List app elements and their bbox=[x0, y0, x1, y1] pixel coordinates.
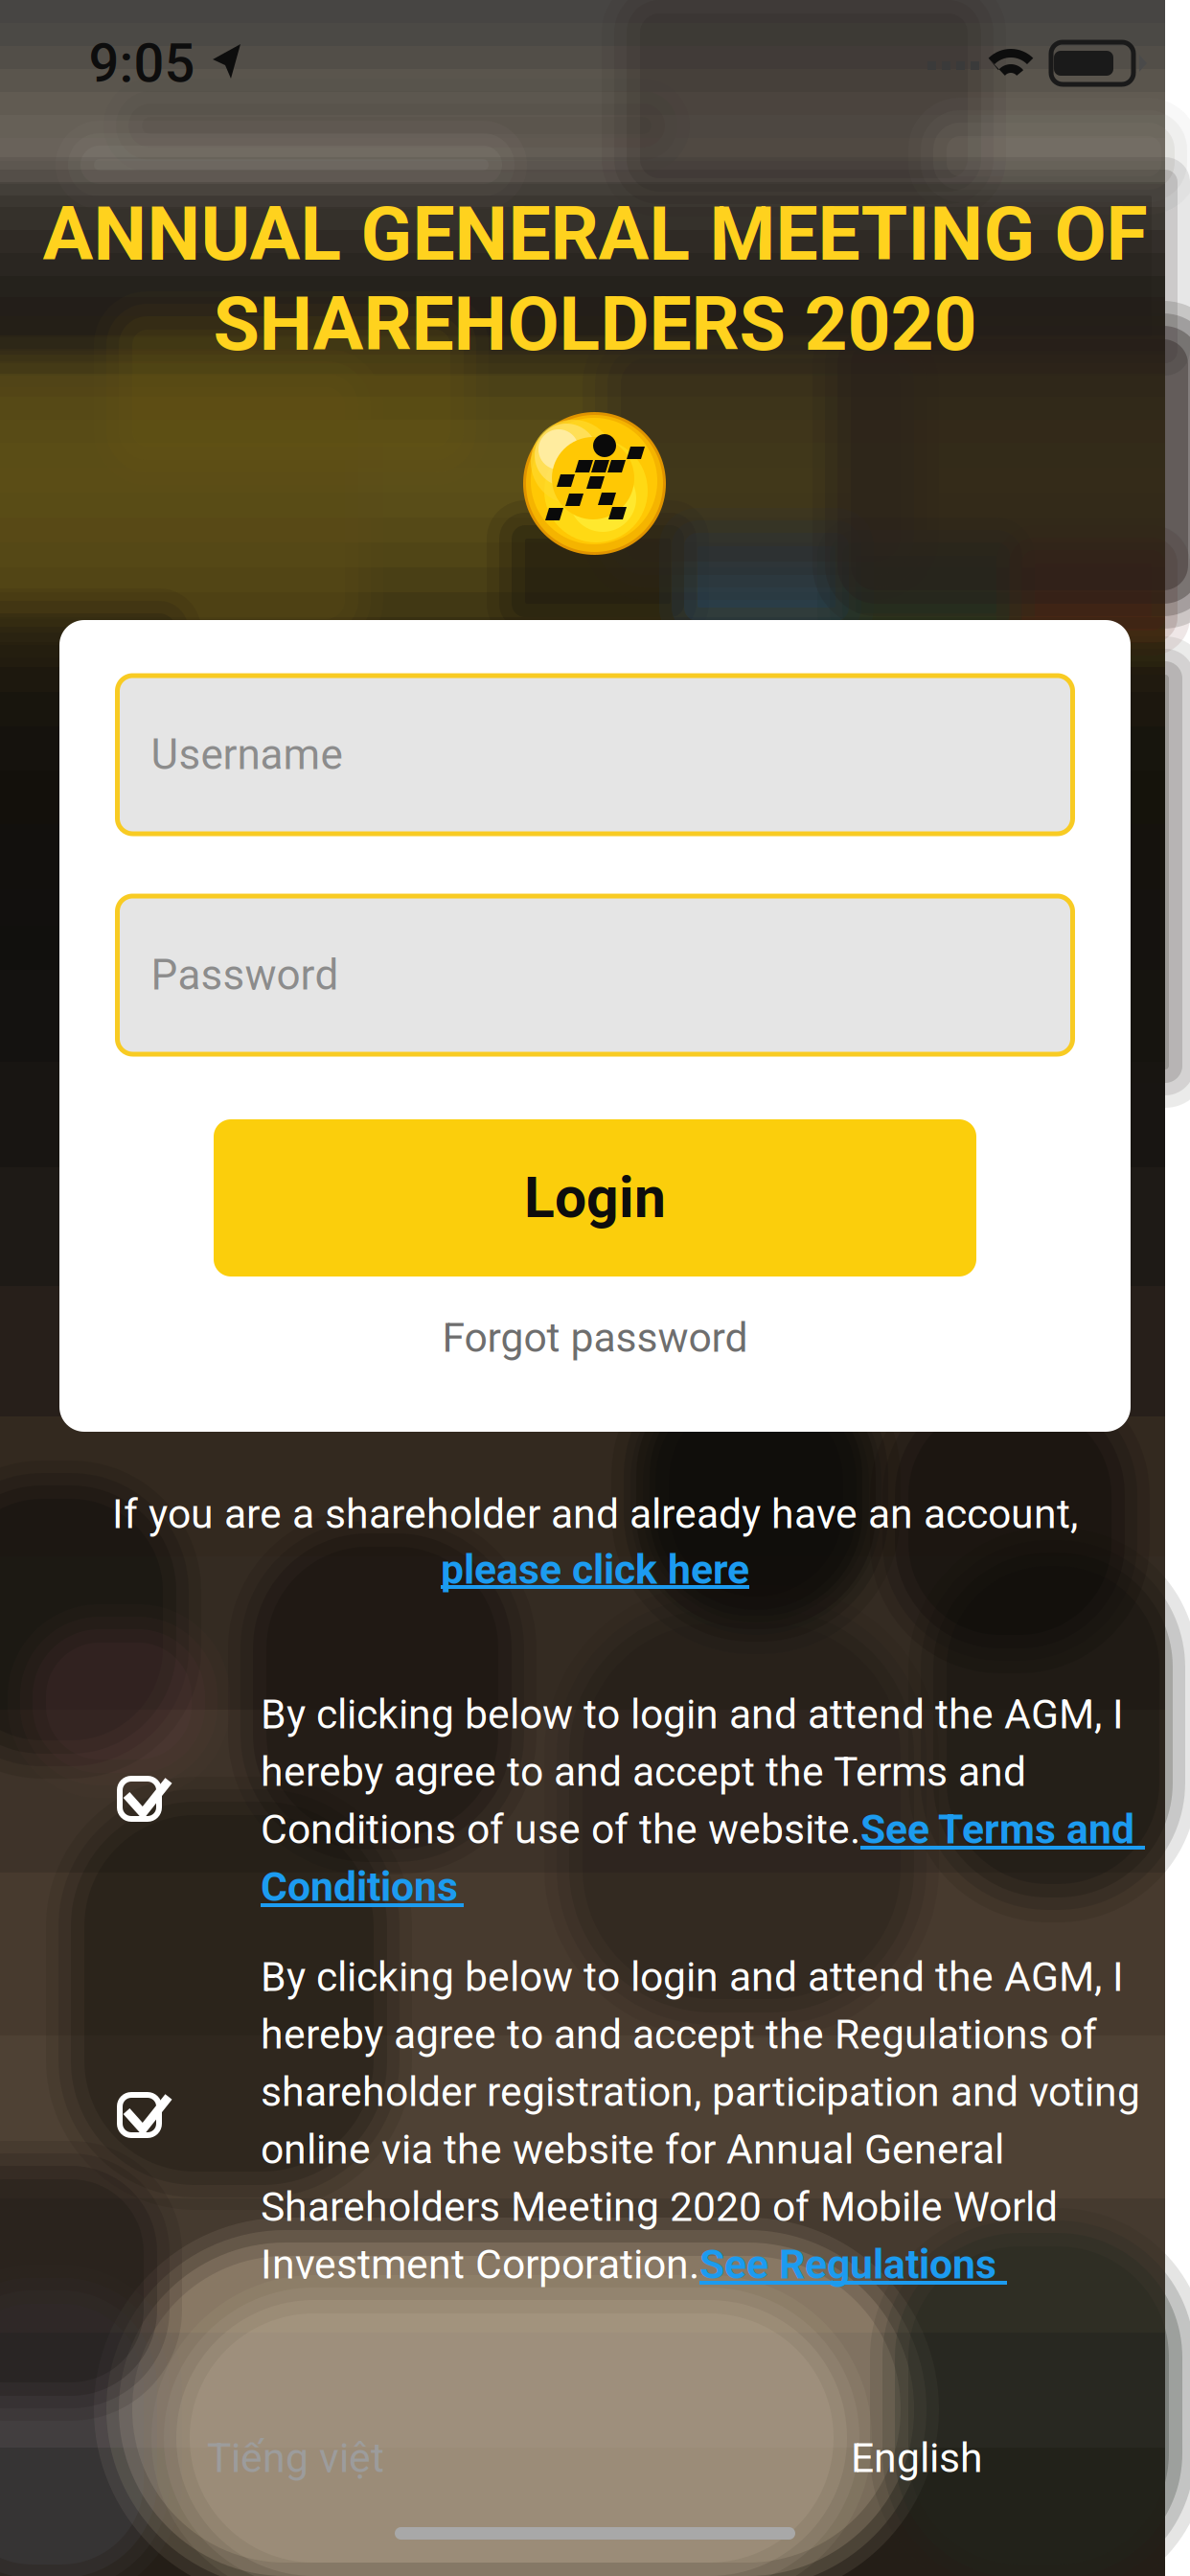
staticText: SHAREHOLDERS 2020 bbox=[213, 280, 977, 368]
staticText: Investment Corporation. bbox=[261, 2241, 699, 2288]
button[interactable]: Forgot password bbox=[355, 1299, 835, 1376]
staticText: Conditions of use of the website. bbox=[261, 1805, 860, 1853]
button[interactable]: Tiếng việt bbox=[207, 2415, 514, 2501]
button[interactable]: English bbox=[676, 2415, 983, 2501]
staticText: If you are a shareholder and already hav… bbox=[112, 1490, 1078, 1538]
staticText: Shareholders Meeting 2020 of Mobile Worl… bbox=[261, 2183, 1058, 2231]
staticText: Password bbox=[151, 950, 339, 1000]
staticText: English bbox=[851, 2434, 983, 2482]
staticText: See Regulations bbox=[699, 2241, 996, 2288]
staticText: Tiếng việt bbox=[207, 2434, 384, 2482]
staticText: online via the website for Annual Genera… bbox=[261, 2126, 1004, 2173]
staticText: 9:05 bbox=[89, 32, 195, 95]
staticText: shareholder registration, participation … bbox=[261, 2068, 1140, 2116]
staticText: Login bbox=[524, 1165, 666, 1231]
staticText: By clicking below to login and attend th… bbox=[261, 1953, 1124, 2001]
staticText: Username bbox=[151, 730, 343, 779]
staticText: hereby agree to and accept the Regulatio… bbox=[261, 2011, 1097, 2058]
button[interactable]: please click here bbox=[441, 1542, 749, 1598]
staticText: please click here bbox=[441, 1546, 749, 1594]
staticText: See Terms and bbox=[860, 1805, 1134, 1853]
button[interactable]: Agree to Terms and Conditions bbox=[92, 1753, 197, 1845]
staticText: hereby agree to and accept the Terms and bbox=[261, 1748, 1026, 1796]
staticText: By clicking below to login and attend th… bbox=[261, 1690, 1124, 1738]
staticText: Conditions bbox=[261, 1863, 458, 1911]
staticText: Forgot password bbox=[442, 1314, 748, 1362]
staticText: ANNUAL GENERAL MEETING OF bbox=[43, 190, 1147, 278]
button[interactable]: Login bbox=[214, 1119, 976, 1276]
button[interactable]: Agree to Regulations bbox=[92, 2069, 197, 2161]
